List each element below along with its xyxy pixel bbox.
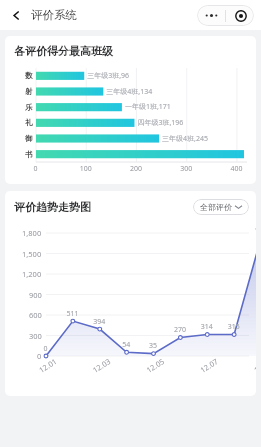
button[interactable]: More bbox=[198, 5, 225, 26]
staticText: 评价系统 bbox=[31, 8, 77, 22]
button[interactable]: Close mini program bbox=[227, 5, 254, 26]
button[interactable]: 全部评价 bbox=[193, 199, 249, 215]
staticText: 评价趋势走势图 bbox=[14, 200, 91, 214]
staticText: 各评价得分最高班级 bbox=[14, 44, 113, 58]
staticText: 全部评价 bbox=[200, 202, 232, 212]
button[interactable]: Back bbox=[6, 5, 26, 25]
